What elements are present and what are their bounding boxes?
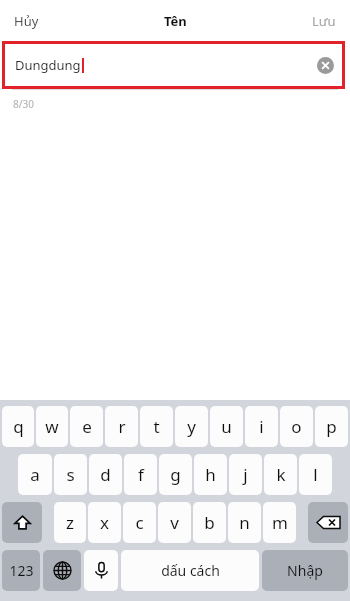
button[interactable]: e bbox=[70, 406, 103, 447]
staticText: Nhập bbox=[287, 561, 323, 580]
button[interactable]: t bbox=[140, 406, 173, 447]
staticText: l bbox=[313, 463, 318, 486]
button[interactable]: l bbox=[299, 454, 332, 495]
button[interactable]: s bbox=[54, 454, 87, 495]
staticText: n bbox=[239, 511, 250, 534]
button[interactable]: b bbox=[193, 502, 226, 543]
button[interactable]: c bbox=[123, 502, 156, 543]
staticText: s bbox=[66, 463, 75, 486]
button[interactable]: Dictate bbox=[84, 550, 118, 591]
staticText: q bbox=[13, 415, 24, 438]
button[interactable]: h bbox=[194, 454, 227, 495]
staticText: u bbox=[221, 415, 232, 438]
staticText: i bbox=[259, 415, 264, 438]
button[interactable]: u bbox=[210, 406, 243, 447]
button[interactable]: Dungdung bbox=[5, 44, 342, 86]
button[interactable]: 123 bbox=[2, 550, 40, 591]
button[interactable]: y bbox=[175, 406, 208, 447]
staticText: w bbox=[45, 415, 59, 438]
staticText: 123 bbox=[9, 561, 34, 580]
staticText: c bbox=[135, 511, 144, 534]
staticText: Dungdung bbox=[15, 56, 81, 74]
button[interactable]: x bbox=[88, 502, 121, 543]
button[interactable]: p bbox=[315, 406, 348, 447]
button[interactable]: v bbox=[158, 502, 191, 543]
button[interactable]: dấu cách bbox=[121, 550, 259, 591]
button[interactable]: Hủy bbox=[7, 4, 46, 38]
button[interactable]: n bbox=[228, 502, 261, 543]
button[interactable]: f bbox=[124, 454, 157, 495]
staticText: m bbox=[272, 511, 288, 534]
staticText: dấu cách bbox=[161, 561, 220, 580]
button[interactable]: z bbox=[54, 502, 86, 543]
button[interactable]: r bbox=[105, 406, 138, 447]
staticText: t bbox=[153, 415, 160, 438]
staticText: k bbox=[276, 463, 286, 486]
button[interactable]: Shift bbox=[2, 502, 42, 543]
staticText: d bbox=[100, 463, 111, 486]
staticText: Tên bbox=[164, 12, 187, 30]
staticText: h bbox=[205, 463, 216, 486]
staticText: g bbox=[170, 463, 181, 486]
button[interactable]: o bbox=[280, 406, 313, 447]
button[interactable]: Lưu bbox=[305, 4, 343, 38]
button[interactable]: g bbox=[159, 454, 192, 495]
button[interactable]: q bbox=[2, 406, 34, 447]
button[interactable]: Nhập bbox=[262, 550, 348, 591]
staticText: Hủy bbox=[14, 12, 39, 30]
staticText: r bbox=[118, 415, 126, 438]
staticText: x bbox=[100, 511, 109, 534]
staticText: 8/30 bbox=[13, 97, 34, 111]
staticText: o bbox=[291, 415, 302, 438]
staticText: p bbox=[326, 415, 337, 438]
staticText: y bbox=[187, 415, 196, 438]
staticText: f bbox=[138, 463, 144, 486]
staticText: z bbox=[66, 511, 74, 534]
staticText: v bbox=[170, 511, 179, 534]
button[interactable]: w bbox=[36, 406, 68, 447]
button[interactable]: j bbox=[229, 454, 262, 495]
button[interactable]: a bbox=[18, 454, 52, 495]
button[interactable]: m bbox=[263, 502, 296, 543]
button[interactable]: d bbox=[89, 454, 122, 495]
staticText: b bbox=[204, 511, 215, 534]
button[interactable]: k bbox=[264, 454, 297, 495]
staticText: Lưu bbox=[312, 12, 336, 30]
button[interactable]: i bbox=[245, 406, 278, 447]
staticText: a bbox=[30, 463, 40, 486]
staticText: j bbox=[243, 463, 248, 486]
staticText: e bbox=[82, 415, 92, 438]
button[interactable]: Change keyboard bbox=[43, 550, 81, 591]
button[interactable]: Clear text bbox=[317, 57, 334, 74]
button[interactable]: Delete bbox=[308, 502, 348, 543]
